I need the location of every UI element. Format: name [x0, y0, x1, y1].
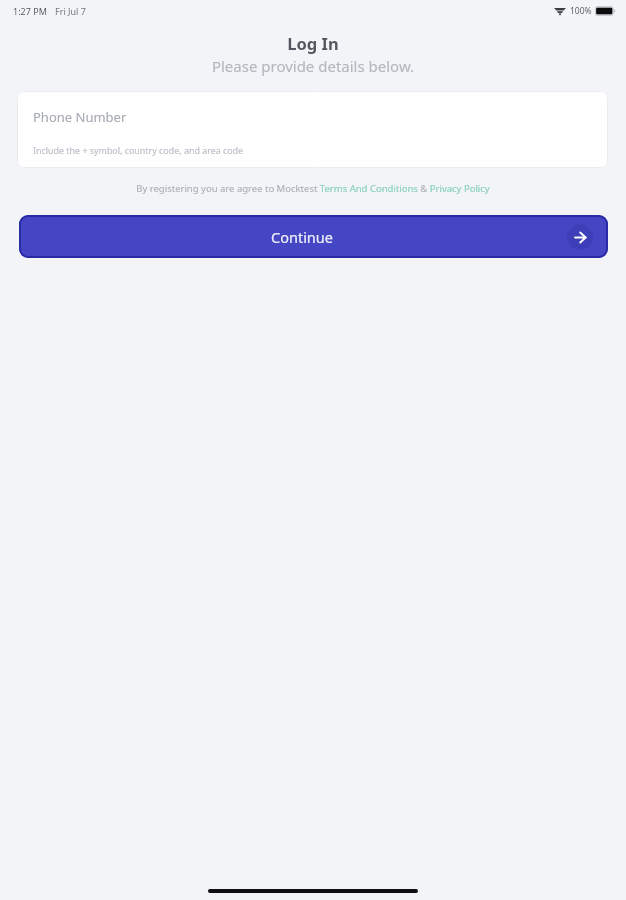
- staticText: 1:27 PM: [13, 5, 47, 17]
- staticText: Phone Number: [33, 108, 127, 126]
- staticText: By registering you are agree to Mocktest…: [136, 182, 490, 195]
- staticText: Log In: [0, 32, 626, 54]
- button[interactable]: Continue: [19, 215, 608, 258]
- button[interactable]: Phone Number: [17, 91, 608, 168]
- staticText: Continue: [271, 227, 333, 247]
- staticText: Please provide details below.: [0, 56, 626, 76]
- staticText: Include the + symbol, country code, and …: [33, 144, 244, 156]
- staticText: 100%: [570, 5, 592, 17]
- staticText: Fri Jul 7: [55, 5, 86, 17]
- other: Continue: [574, 231, 587, 244]
